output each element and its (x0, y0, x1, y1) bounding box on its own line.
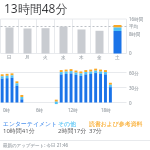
staticText: 16時間 (129, 16, 144, 22)
staticText: 30分 (129, 85, 139, 91)
staticText: 0時 (3, 107, 11, 113)
staticText: 水 (61, 55, 66, 61)
staticText: 0 (129, 100, 132, 106)
staticText: 10時間41分 (3, 127, 35, 135)
staticText: 土 (115, 55, 120, 61)
staticText: 読書および参考資料 (89, 120, 143, 127)
staticText: 6時 (36, 107, 44, 113)
staticText: 火 (43, 55, 48, 61)
staticText: 37分 (89, 127, 102, 135)
staticText: 最新のアップデート: 今日 21:46 (3, 142, 69, 148)
staticText: その他 (58, 120, 76, 127)
button[interactable]: その他 (58, 120, 76, 127)
button[interactable]: エンターテイメント (3, 120, 58, 127)
staticText: 月 (25, 55, 30, 61)
staticText: 18時 (101, 107, 111, 113)
staticText: 木 (79, 55, 84, 61)
staticText: 2時間17分 (58, 127, 87, 135)
button[interactable]: 読書および参考資料 (89, 120, 143, 127)
staticText: 13時間48分 (4, 0, 68, 16)
staticText: 平均 (129, 24, 138, 30)
staticText: 60分 (129, 70, 139, 76)
staticText: 0 (129, 50, 132, 56)
staticText: 金 (97, 55, 102, 61)
staticText: 12時 (68, 107, 78, 113)
staticText: 8時間 (129, 31, 141, 37)
staticText: 日 (7, 55, 12, 61)
staticText: エンターテイメント (3, 120, 58, 127)
